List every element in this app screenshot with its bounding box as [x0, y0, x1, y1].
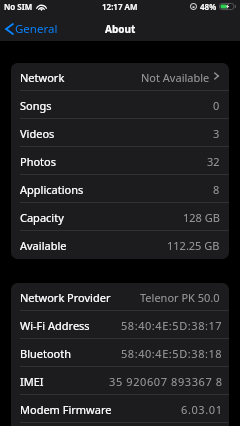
button[interactable]: Wi-Fi Address: [11, 311, 229, 339]
staticText: 58:40:4E:5D:38:18: [121, 346, 223, 361]
staticText: Not Available: [141, 70, 210, 85]
button[interactable]: General: [0, 20, 64, 39]
staticText: 3: [213, 126, 220, 141]
button[interactable]: Videos: [11, 119, 229, 147]
button[interactable]: IMEI: [11, 367, 229, 395]
button[interactable]: Photos: [11, 147, 229, 175]
staticText: About: [105, 22, 136, 36]
staticText: Network Provider: [20, 290, 111, 305]
staticText: Network: [20, 70, 65, 85]
staticText: Wi-Fi Address: [20, 318, 90, 333]
staticText: IMEI: [20, 374, 44, 389]
staticText: Photos: [20, 154, 57, 169]
staticText: 6.03.01: [181, 402, 223, 417]
staticText: 35 920607 893367 8: [109, 374, 223, 389]
staticText: Available: [20, 238, 67, 253]
staticText: 12:17 AM: [102, 1, 138, 12]
staticText: Modem Firmware: [20, 402, 112, 417]
button[interactable]: Network Provider: [11, 283, 229, 311]
staticText: 128 GB: [183, 210, 220, 225]
button[interactable]: Network: [11, 63, 229, 91]
staticText: General: [15, 21, 58, 37]
button[interactable]: Available: [11, 231, 229, 259]
button[interactable]: Songs: [11, 91, 229, 119]
staticText: Videos: [20, 126, 55, 141]
button[interactable]: Modem Firmware: [11, 395, 229, 423]
staticText: 48%: [200, 1, 217, 12]
staticText: 32: [207, 154, 220, 169]
staticText: Songs: [20, 98, 52, 113]
staticText: 8: [213, 182, 220, 197]
button[interactable]: Bluetooth: [11, 339, 229, 367]
staticText: Bluetooth: [20, 346, 72, 361]
button[interactable]: Applications: [11, 175, 229, 203]
staticText: Telenor PK 50.0: [140, 290, 220, 305]
staticText: No SIM: [4, 1, 33, 12]
staticText: Capacity: [20, 210, 64, 225]
staticText: 112.25 GB: [167, 238, 220, 253]
button[interactable]: Capacity: [11, 203, 229, 231]
staticText: 0: [213, 98, 220, 113]
staticText: 58:40:4E:5D:38:17: [121, 318, 223, 333]
staticText: Applications: [20, 182, 84, 197]
